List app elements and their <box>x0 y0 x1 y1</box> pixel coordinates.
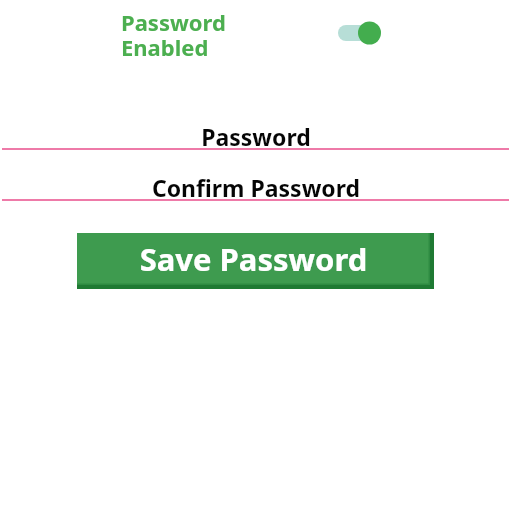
button[interactable]: Password <box>0 118 512 152</box>
staticText: Password <box>0 121 512 152</box>
button[interactable]: Toggle password enabled <box>334 18 386 48</box>
staticText: Confirm Password <box>0 172 512 203</box>
button[interactable]: Save Password <box>77 233 434 289</box>
button[interactable]: Confirm Password <box>0 169 512 203</box>
staticText: Save Password <box>75 238 432 280</box>
staticText: Password Enabled <box>121 7 226 62</box>
